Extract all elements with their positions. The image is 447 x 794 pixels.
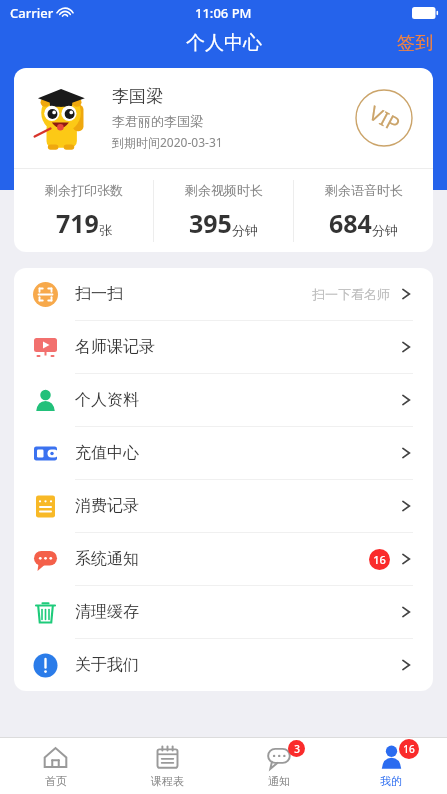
staticText: 通知 — [268, 774, 290, 788]
button[interactable]: 清理缓存 — [14, 586, 433, 638]
staticText: 李君丽的李国梁 — [112, 113, 203, 129]
button[interactable]: 系统通知 — [14, 533, 433, 585]
staticText: 关于我们 — [75, 655, 399, 675]
staticText: 扫一下看名师 — [312, 286, 390, 302]
button[interactable]: 充值中心 — [14, 427, 433, 479]
staticText: 395 — [189, 206, 232, 240]
button[interactable]: 关于我们 — [14, 639, 433, 691]
staticText: 684 — [329, 206, 372, 240]
button[interactable]: 李国梁 — [14, 68, 433, 168]
staticText: 名师课记录 — [75, 337, 399, 357]
staticText: 个人资料 — [75, 390, 399, 410]
staticText: 张 — [99, 222, 112, 238]
staticText: 系统通知 — [75, 549, 369, 569]
staticText: 分钟 — [232, 222, 258, 238]
staticText: Carrier — [10, 4, 54, 22]
button[interactable]: 消费记录 — [14, 480, 433, 532]
staticText: 个人中心 — [186, 31, 262, 55]
staticText: 剩余打印张数 — [45, 182, 123, 198]
staticText: VIP — [364, 99, 404, 138]
staticText: 719 — [56, 206, 99, 240]
button[interactable]: 16 — [335, 738, 447, 794]
staticText: 16 — [373, 552, 386, 567]
staticText: 我的 — [380, 774, 402, 788]
staticText: 扫一扫 — [75, 284, 312, 304]
staticText: 剩余语音时长 — [325, 182, 403, 198]
button[interactable]: 名师课记录 — [14, 321, 433, 373]
staticText: 充值中心 — [75, 443, 399, 463]
button[interactable]: 签到 — [383, 28, 447, 59]
button[interactable]: 3 — [223, 738, 335, 794]
staticText: 签到 — [397, 32, 433, 55]
staticText: 到期时间2020-03-31 — [112, 134, 223, 150]
staticText: 首页 — [45, 774, 67, 788]
button[interactable]: 首页 — [0, 738, 111, 794]
staticText: 11:06 PM — [195, 4, 252, 22]
button[interactable]: 课程表 — [111, 738, 223, 794]
staticText: 消费记录 — [75, 496, 399, 516]
staticText: 课程表 — [151, 774, 184, 788]
staticText: 分钟 — [372, 222, 398, 238]
button[interactable]: 个人资料 — [14, 374, 433, 426]
button[interactable]: 扫一扫 — [14, 268, 433, 320]
staticText: 3 — [294, 742, 300, 756]
staticText: 清理缓存 — [75, 602, 399, 622]
staticText: 16 — [403, 742, 415, 756]
staticText: 李国梁 — [112, 86, 163, 107]
staticText: 剩余视频时长 — [185, 182, 263, 198]
